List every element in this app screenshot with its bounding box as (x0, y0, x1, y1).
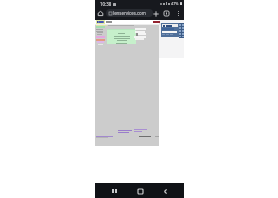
button[interactable]: More options (174, 7, 183, 20)
staticText: 10:38 (100, 1, 112, 7)
button[interactable]: Tabs (162, 7, 171, 20)
button[interactable]: Home (133, 184, 147, 198)
button[interactable]: Back (158, 184, 172, 198)
button[interactable]: lenservices.com (106, 9, 153, 17)
staticText: lenservices.com (113, 10, 146, 16)
staticText: 47% (171, 1, 179, 6)
button[interactable]: New tab (151, 7, 160, 20)
button[interactable]: Recents (107, 184, 121, 198)
button[interactable]: Home (95, 7, 105, 20)
